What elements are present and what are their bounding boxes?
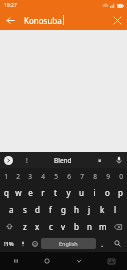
button[interactable]: Voice typing	[17, 235, 29, 252]
button[interactable]: 2	[12, 168, 24, 184]
button[interactable]: 1	[0, 168, 12, 184]
button[interactable]: Emoji	[29, 235, 41, 252]
button[interactable]: m	[96, 218, 109, 235]
button[interactable]: !1%	[0, 235, 17, 252]
button[interactable]: Backspace	[109, 218, 127, 235]
button[interactable]: o	[101, 184, 114, 201]
staticText: d	[35, 204, 40, 215]
staticText: 5	[54, 172, 58, 181]
staticText: q	[4, 187, 9, 198]
button[interactable]: d	[31, 201, 44, 218]
button[interactable]: w	[12, 184, 24, 201]
staticText: Blend	[54, 156, 72, 165]
staticText: z	[23, 221, 27, 232]
staticText: x	[35, 221, 40, 232]
button[interactable]: Home	[31, 252, 63, 270]
button[interactable]: x	[31, 218, 44, 235]
staticText: w	[15, 187, 22, 198]
staticText: i	[93, 187, 96, 198]
staticText: v	[61, 221, 66, 232]
button[interactable]: 7	[75, 168, 88, 184]
button[interactable]: p	[114, 184, 127, 201]
button[interactable]: k	[96, 201, 109, 218]
staticText: 3	[28, 172, 32, 181]
button[interactable]: s	[18, 201, 31, 218]
button[interactable]: z	[18, 218, 31, 235]
staticText: 10:27	[4, 2, 17, 9]
button[interactable]: Expand toolbar	[0, 152, 16, 168]
staticText: t	[54, 187, 57, 198]
button[interactable]: h	[70, 201, 83, 218]
button[interactable]: Clear	[107, 10, 127, 30]
button[interactable]: !	[16, 152, 38, 168]
staticText: ▪	[98, 157, 102, 163]
button[interactable]: Change keyboard	[95, 252, 127, 270]
button[interactable]: g	[57, 201, 70, 218]
button[interactable]: English	[41, 238, 96, 249]
staticText: English	[59, 240, 78, 247]
staticText: b	[74, 221, 79, 232]
button[interactable]: Back	[0, 10, 20, 30]
staticText: 7	[80, 172, 84, 181]
staticText: k	[100, 204, 105, 215]
button[interactable]: .	[96, 235, 108, 252]
staticText: n	[87, 221, 92, 232]
button[interactable]: v	[57, 218, 70, 235]
button[interactable]: 5	[49, 168, 62, 184]
staticText: r	[41, 187, 45, 198]
staticText: Konosuba	[24, 15, 62, 26]
staticText: 2	[16, 172, 20, 181]
button[interactable]: 0	[114, 168, 127, 184]
button[interactable]: i	[88, 184, 101, 201]
button[interactable]: Blend	[38, 152, 88, 168]
staticText: !	[26, 156, 28, 165]
button[interactable]: b	[70, 218, 83, 235]
button[interactable]: c	[44, 218, 57, 235]
button[interactable]: l	[109, 201, 122, 218]
button[interactable]: 3	[24, 168, 36, 184]
staticText: 0	[119, 172, 123, 181]
staticText: p	[118, 187, 123, 198]
staticText: !1%	[4, 240, 14, 247]
staticText: s	[23, 204, 27, 215]
staticText: o	[105, 187, 110, 198]
button[interactable]: ▪	[88, 152, 111, 168]
button[interactable]: 8	[88, 168, 101, 184]
button[interactable]: n	[83, 218, 96, 235]
staticText: y	[66, 187, 71, 198]
button[interactable]: u	[75, 184, 88, 201]
staticText: 9	[106, 172, 110, 181]
staticText: e	[28, 187, 33, 198]
button[interactable]: Shift	[0, 218, 18, 235]
button[interactable]: 6	[62, 168, 75, 184]
button[interactable]: j	[83, 201, 96, 218]
button[interactable]: t	[49, 184, 62, 201]
staticText: m	[99, 221, 107, 232]
button[interactable]: f	[44, 201, 57, 218]
button[interactable]: 9	[101, 168, 114, 184]
button[interactable]: q	[0, 184, 12, 201]
button[interactable]: Voice input	[111, 152, 127, 168]
staticText: c	[49, 221, 53, 232]
staticText: 6	[67, 172, 71, 181]
staticText: 1	[4, 172, 8, 181]
staticText: 4	[41, 172, 45, 181]
button[interactable]: Hide keyboard	[63, 252, 95, 270]
button[interactable]: Search	[108, 235, 127, 252]
button[interactable]: 4	[36, 168, 49, 184]
staticText: u	[79, 187, 84, 198]
staticText: l	[114, 204, 117, 215]
staticText: .	[101, 238, 104, 249]
staticText: f	[49, 204, 52, 215]
button[interactable]: a	[5, 201, 18, 218]
button[interactable]: e	[24, 184, 36, 201]
staticText: 8	[93, 172, 97, 181]
staticText: g	[61, 204, 66, 215]
button[interactable]: r	[36, 184, 49, 201]
button[interactable]: Konosuba	[20, 10, 107, 30]
button[interactable]: Recents	[0, 252, 31, 270]
staticText: j	[88, 204, 91, 215]
staticText: h	[74, 204, 79, 215]
button[interactable]: y	[62, 184, 75, 201]
staticText: a	[9, 204, 14, 215]
